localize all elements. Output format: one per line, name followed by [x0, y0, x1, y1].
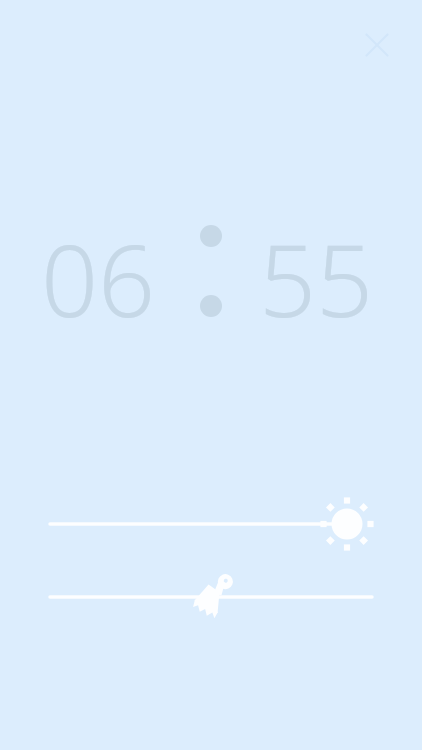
staticText: 06	[41, 210, 156, 346]
button[interactable]: Brightness	[30, 494, 392, 554]
staticText: 55	[259, 210, 374, 346]
button[interactable]: Brush size	[30, 567, 392, 627]
